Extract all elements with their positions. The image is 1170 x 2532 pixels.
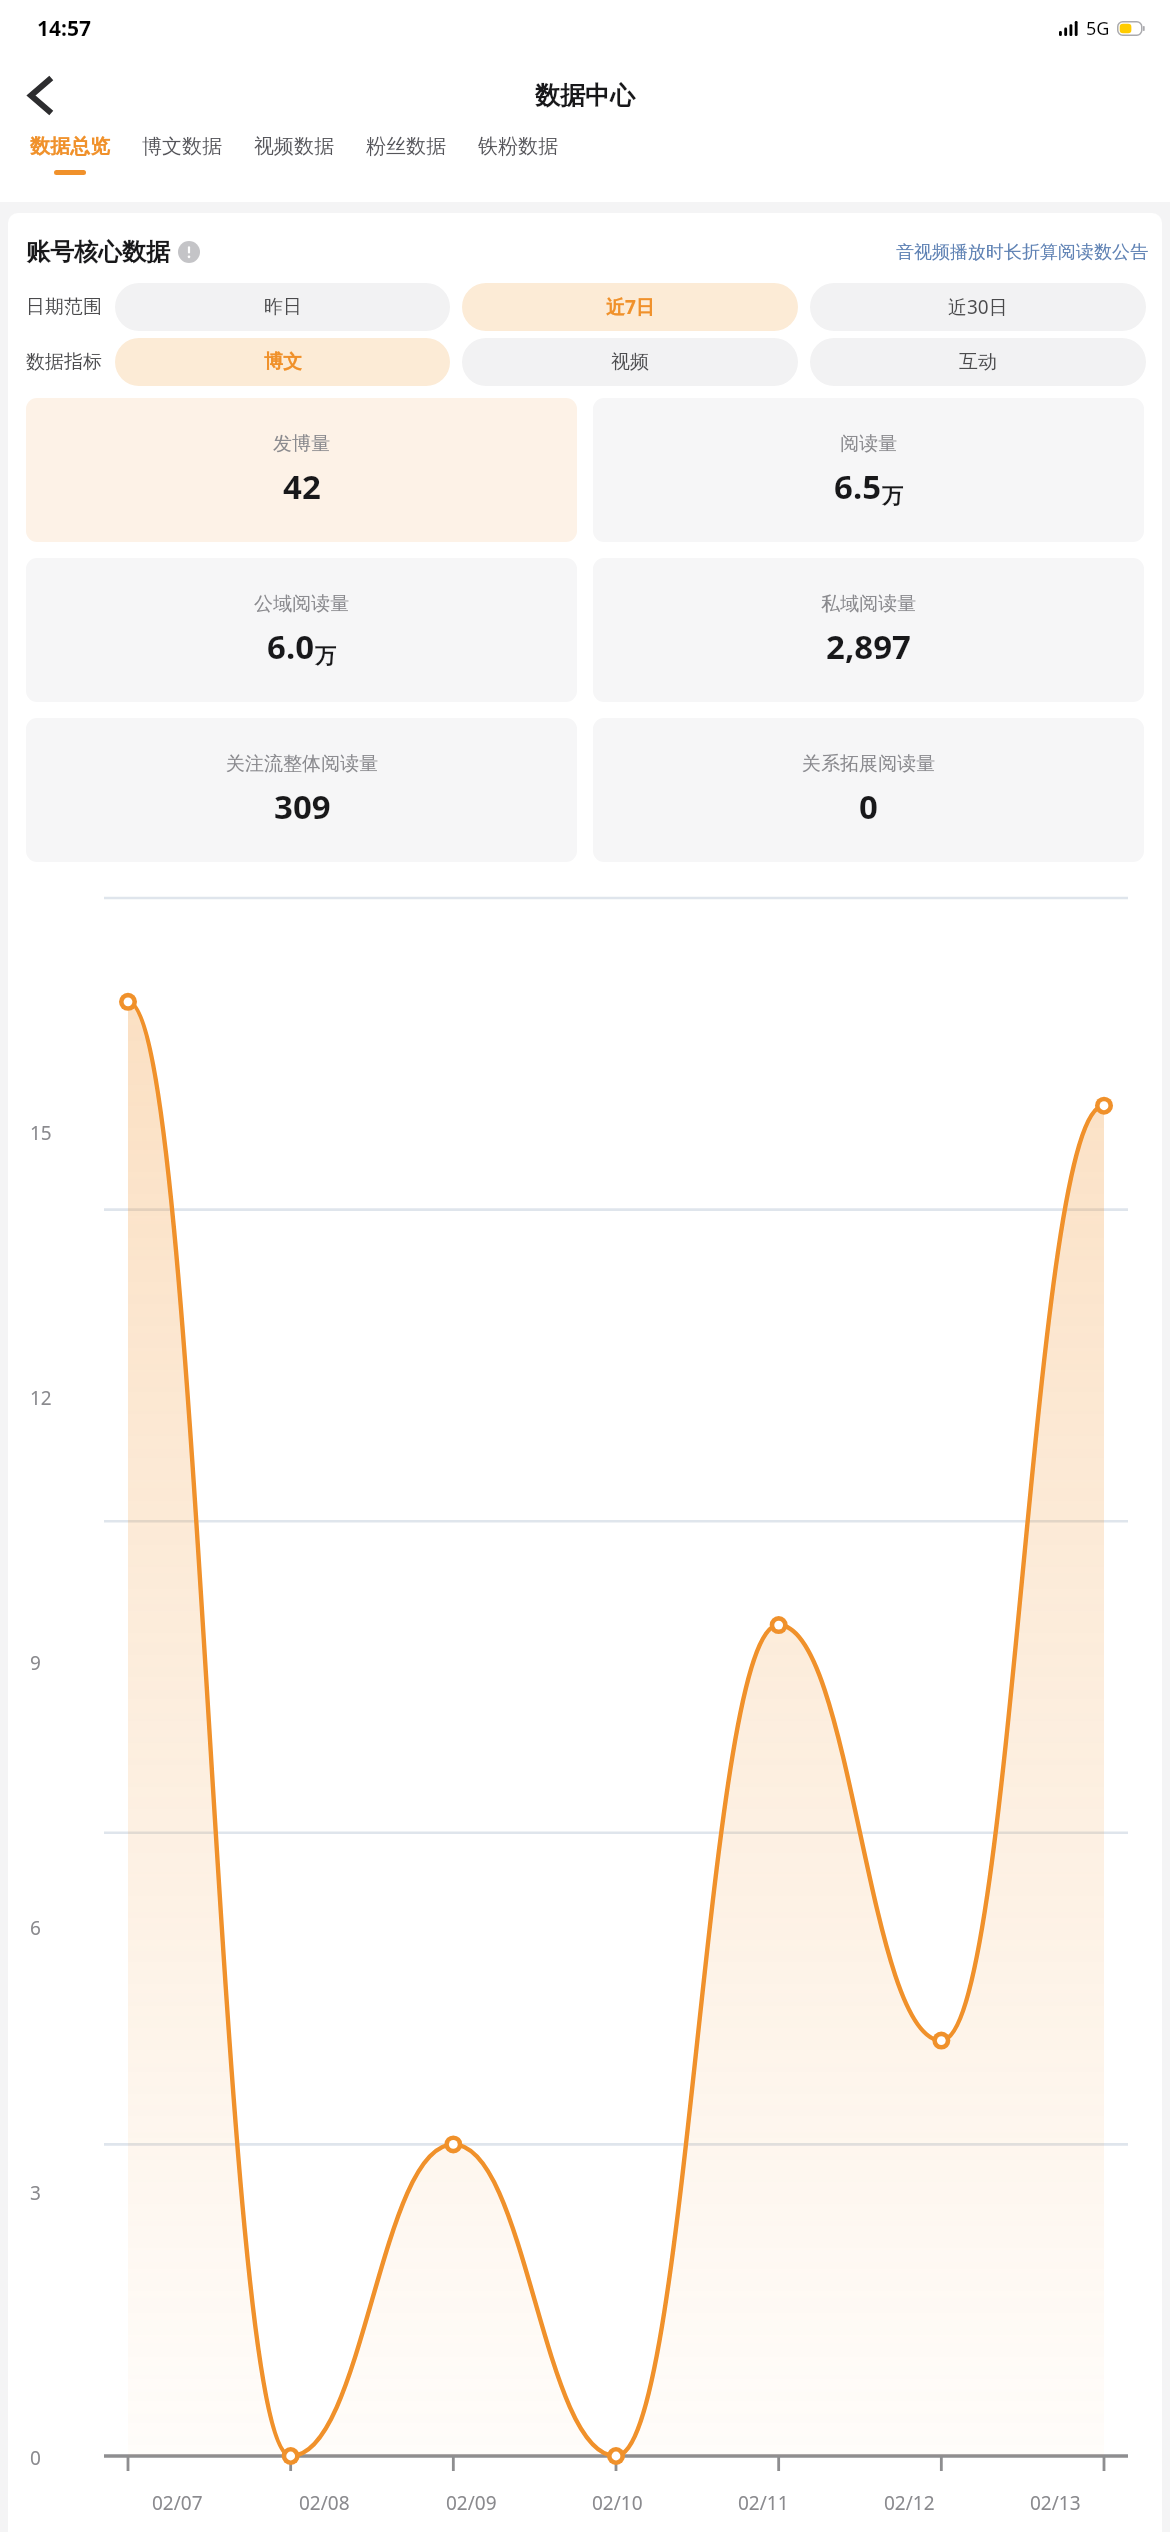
button[interactable]: 粉丝数据 (350, 134, 462, 170)
staticText: 博文数据 (142, 134, 222, 159)
button[interactable]: 发博量 (26, 398, 577, 542)
staticText: 2,897 (826, 624, 911, 669)
staticText: 阅读量 (840, 432, 897, 456)
button[interactable]: 关注流整体阅读量 (26, 718, 577, 862)
staticText: 02/12 (884, 2490, 935, 2516)
staticText: 互动 (959, 350, 997, 374)
button[interactable]: 公域阅读量 (26, 558, 577, 702)
staticText: 14:57 (37, 14, 91, 43)
button[interactable]: 博文数据 (126, 134, 238, 170)
button[interactable]: 视频数据 (238, 134, 350, 170)
staticText: 6 (30, 1915, 41, 1941)
staticText: 公域阅读量 (254, 592, 349, 616)
staticText: 9 (30, 1650, 41, 1676)
button[interactable]: 说明 (178, 241, 200, 263)
staticText: 昨日 (264, 295, 302, 319)
staticText: 万 (882, 483, 903, 509)
staticText: 12 (30, 1385, 52, 1411)
staticText: 近7日 (606, 294, 655, 320)
button[interactable]: 音视频播放时长折算阅读数公告 (896, 241, 1148, 264)
staticText: 15 (30, 1120, 52, 1146)
button[interactable]: 互动 (810, 338, 1146, 386)
staticText: 私域阅读量 (821, 592, 916, 616)
staticText: 02/08 (299, 2490, 350, 2516)
staticText: 02/09 (446, 2490, 497, 2516)
staticText: 账号核心数据 (26, 237, 170, 267)
staticText: 数据指标 (26, 350, 102, 374)
staticText: 3 (30, 2180, 41, 2206)
staticText: 5G (1086, 16, 1110, 41)
staticText: 02/11 (738, 2490, 789, 2516)
staticText: 视频 (611, 350, 649, 374)
staticText: 日期范围 (26, 295, 102, 319)
staticText: 02/10 (592, 2490, 643, 2516)
button[interactable]: Back (12, 67, 68, 123)
staticText: 铁粉数据 (478, 134, 558, 159)
button[interactable]: 关系拓展阅读量 (593, 718, 1144, 862)
button[interactable]: 博文 (115, 338, 450, 386)
button[interactable]: 数据总览 (14, 134, 126, 175)
staticText: 6.5 (834, 464, 882, 509)
button[interactable]: 昨日 (115, 283, 450, 331)
staticText: 42 (283, 464, 321, 509)
staticText: 6.0 (267, 624, 315, 669)
staticText: 近30日 (948, 294, 1008, 320)
staticText: 万 (315, 643, 336, 669)
staticText: 数据中心 (535, 80, 635, 111)
staticText: 数据总览 (30, 134, 110, 159)
button[interactable]: 近7日 (462, 283, 798, 331)
button[interactable]: 近30日 (810, 283, 1146, 331)
button[interactable]: 视频 (462, 338, 798, 386)
staticText: 02/07 (152, 2490, 203, 2516)
staticText: 02/13 (1030, 2490, 1081, 2516)
staticText: 0 (859, 784, 878, 829)
staticText: 发博量 (273, 432, 330, 456)
staticText: 309 (274, 784, 331, 829)
staticText: 关系拓展阅读量 (802, 752, 935, 776)
staticText: 视频数据 (254, 134, 334, 159)
staticText: 粉丝数据 (366, 134, 446, 159)
button[interactable]: 铁粉数据 (462, 134, 574, 170)
staticText: 博文 (264, 350, 302, 374)
button[interactable]: 阅读量 (593, 398, 1144, 542)
staticText: 0 (30, 2445, 41, 2471)
button[interactable]: 私域阅读量 (593, 558, 1144, 702)
staticText: 关注流整体阅读量 (226, 752, 378, 776)
